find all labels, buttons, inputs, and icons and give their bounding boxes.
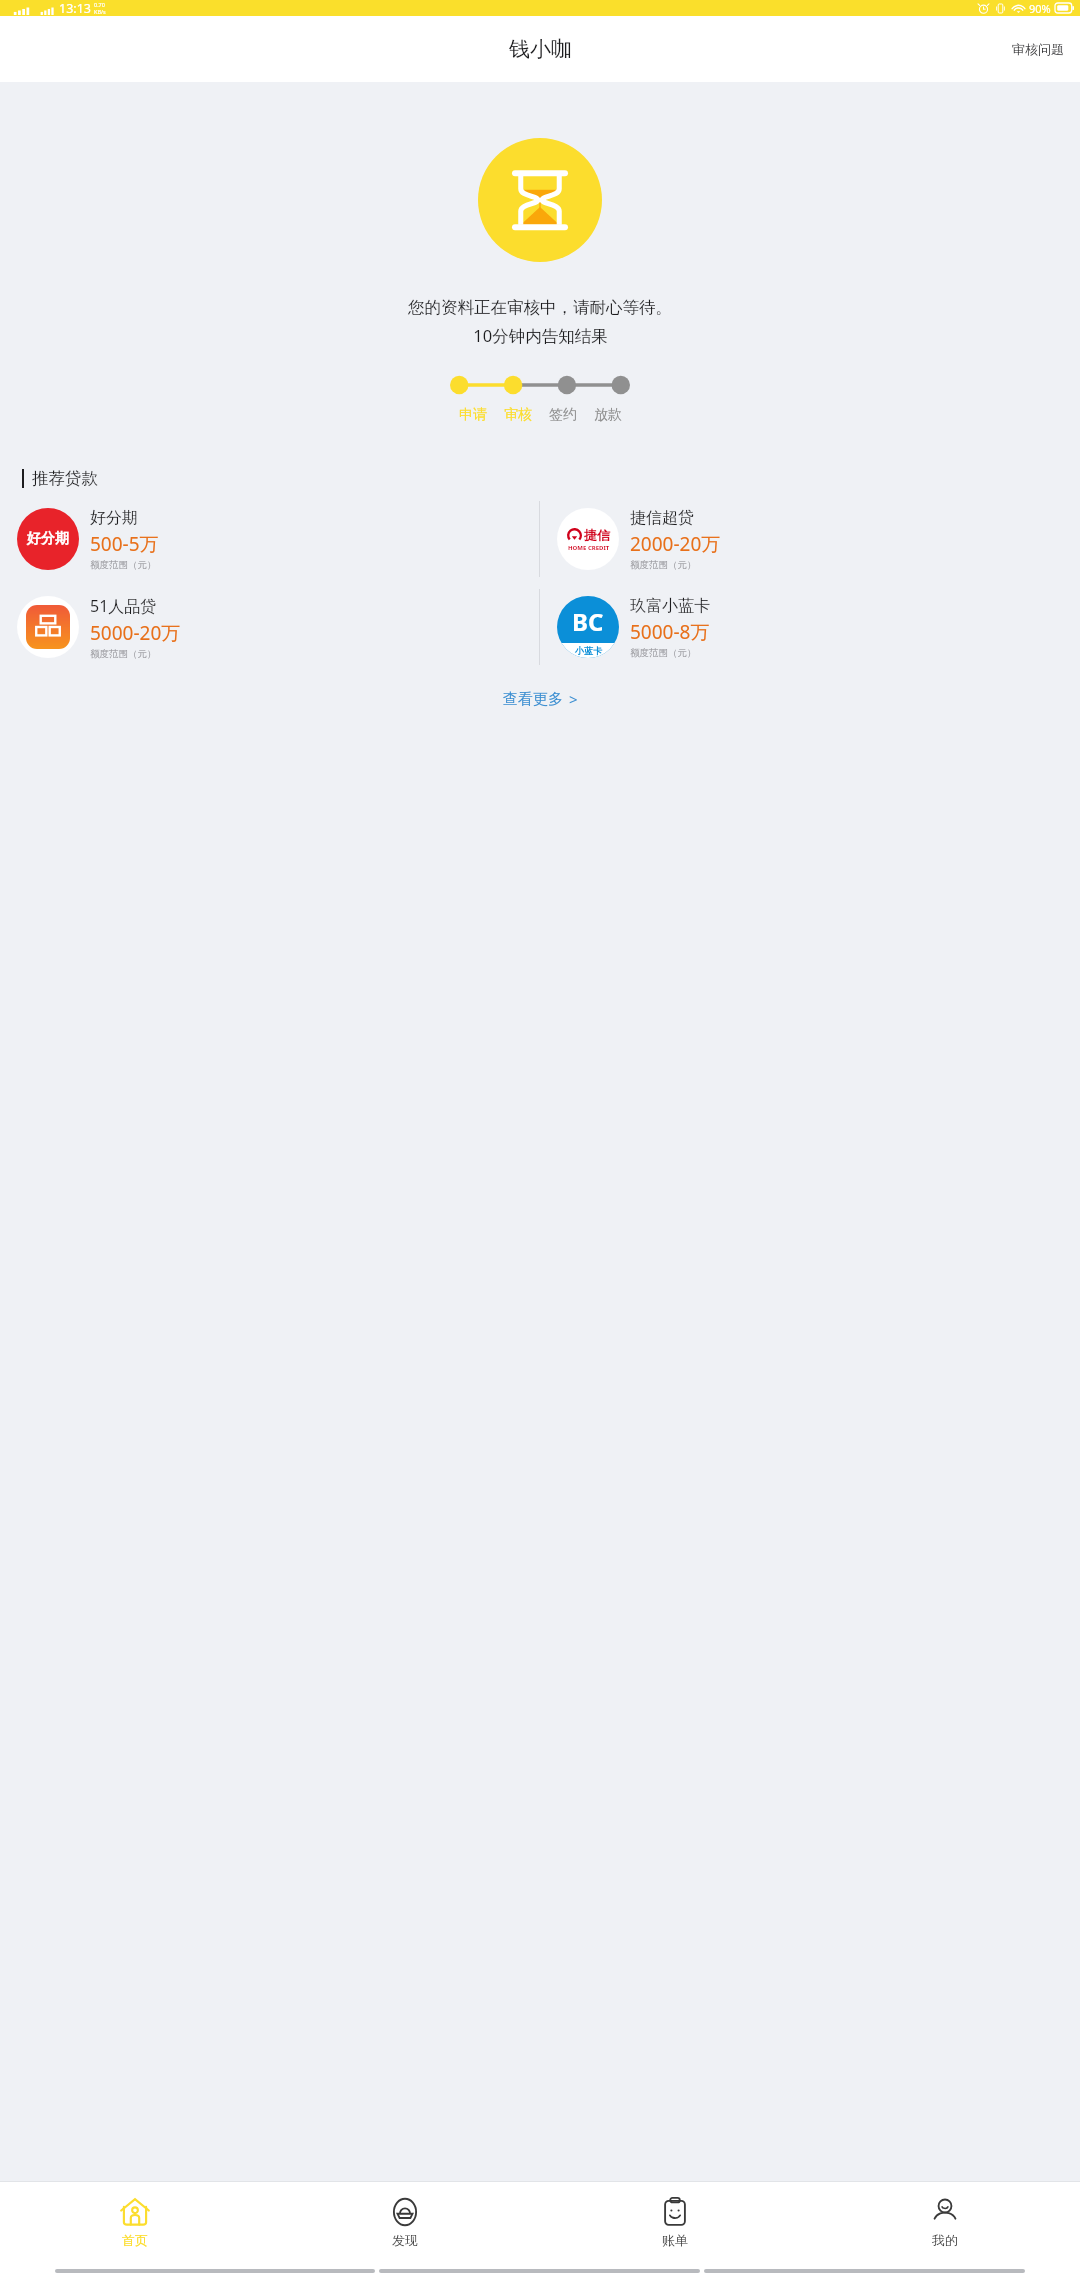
staticText: 2000-20万 (630, 531, 721, 557)
staticText: 审核问题 (1012, 41, 1064, 57)
button[interactable]: BC (540, 583, 1080, 671)
staticText: 签约 (549, 406, 577, 424)
button[interactable]: 账单 (540, 2182, 810, 2262)
staticText: 10分钟内告知结果 (473, 324, 608, 347)
staticText: 额度范围（元） (630, 559, 697, 571)
staticText: 捷信 (584, 527, 610, 543)
staticText: 钱小咖 (509, 36, 572, 62)
staticText: 账单 (662, 2232, 688, 2248)
staticText: 发现 (392, 2232, 418, 2248)
button[interactable]: 发现 (270, 2182, 540, 2262)
staticText: 好分期 (90, 508, 138, 528)
staticText: 额度范围（元） (90, 648, 157, 660)
staticText: 好分期 (27, 530, 69, 548)
button[interactable]: 首页 (0, 2182, 270, 2262)
staticText: 我的 (932, 2232, 958, 2248)
staticText: 0.70 (94, 1, 105, 8)
staticText: 您的资料正在审核中，请耐心等待。 (408, 297, 672, 318)
button[interactable]: 捷信 (540, 495, 1080, 583)
staticText: 申请 (459, 406, 487, 424)
staticText: 首页 (122, 2232, 148, 2248)
button[interactable]: 好分期 (0, 495, 539, 583)
staticText: HOME CREDIT (568, 544, 610, 552)
staticText: 5000-8万 (630, 619, 710, 645)
staticText: 5000-20万 (90, 620, 181, 646)
button[interactable]: 我的 (810, 2182, 1080, 2262)
staticText: 额度范围（元） (90, 559, 157, 571)
button[interactable]: 审核问题 (996, 29, 1080, 69)
staticText: 90% (1029, 1, 1051, 16)
staticText: 13:13 (59, 0, 91, 16)
staticText: 查看更多 (503, 690, 563, 709)
staticText: BC (572, 605, 604, 638)
button[interactable]: 51人品贷 (0, 583, 539, 671)
staticText: 小蓝卡 (575, 645, 602, 656)
staticText: 捷信超贷 (630, 508, 694, 528)
staticText: 玖富小蓝卡 (630, 596, 710, 616)
staticText: 推荐贷款 (32, 468, 98, 489)
staticText: 放款 (594, 406, 622, 424)
staticText: 500-5万 (90, 531, 159, 557)
staticText: KB/s (94, 8, 106, 15)
staticText: > (569, 689, 578, 709)
staticText: 额度范围（元） (630, 647, 697, 659)
staticText: 审核 (504, 406, 532, 424)
button[interactable]: 查看更多 (479, 681, 602, 717)
staticText: 51人品贷 (90, 595, 157, 617)
